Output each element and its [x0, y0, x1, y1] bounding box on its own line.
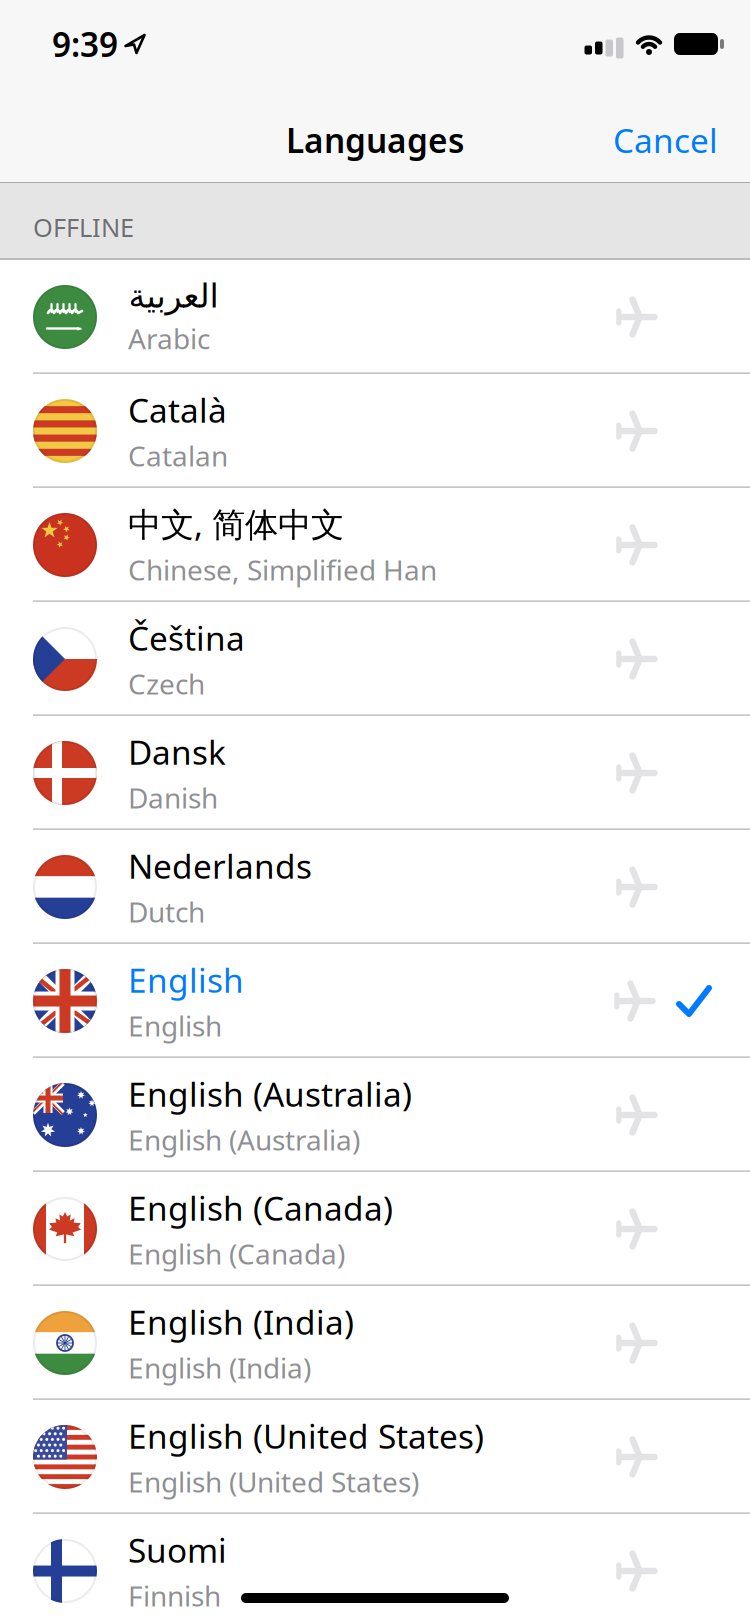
staticText: English (Canada): [128, 1186, 393, 1230]
button[interactable]: English: [0, 944, 750, 1058]
staticText: العربية: [128, 277, 218, 315]
staticText: Finnish: [128, 1577, 221, 1614]
staticText: 中文, 简体中文: [128, 502, 344, 546]
staticText: Catalan: [128, 437, 228, 474]
staticText: Danish: [128, 779, 218, 816]
staticText: Suomi: [128, 1528, 227, 1572]
button[interactable]: English (United States): [0, 1400, 750, 1514]
staticText: Chinese, Simplified Han: [128, 551, 437, 588]
button[interactable]: English (Australia): [0, 1058, 750, 1172]
button[interactable]: Suomi: [0, 1514, 750, 1624]
staticText: Languages: [286, 118, 464, 162]
button[interactable]: Nederlands: [0, 830, 750, 944]
staticText: English (Canada): [128, 1235, 345, 1272]
staticText: English: [128, 1007, 222, 1044]
staticText: OFFLINE: [33, 210, 134, 244]
staticText: Čeština: [128, 616, 245, 660]
staticText: English: [128, 958, 244, 1002]
staticText: English (United States): [128, 1414, 484, 1458]
staticText: 9:39: [52, 22, 118, 66]
staticText: Dansk: [128, 730, 226, 774]
button[interactable]: 中文, 简体中文: [0, 488, 750, 602]
staticText: English (India): [128, 1300, 354, 1344]
button[interactable]: العربية: [0, 260, 750, 374]
staticText: Cancel: [613, 118, 718, 162]
staticText: Nederlands: [128, 844, 312, 888]
staticText: Arabic: [128, 320, 210, 357]
button[interactable]: Català: [0, 374, 750, 488]
staticText: Czech: [128, 665, 205, 702]
staticText: Dutch: [128, 893, 205, 930]
staticText: English (United States): [128, 1463, 419, 1500]
staticText: English (India): [128, 1349, 311, 1386]
button[interactable]: English (India): [0, 1286, 750, 1400]
staticText: English (Australia): [128, 1121, 360, 1158]
button[interactable]: English (Canada): [0, 1172, 750, 1286]
button[interactable]: Dansk: [0, 716, 750, 830]
button[interactable]: Cancel: [613, 118, 750, 162]
staticText: Català: [128, 388, 227, 432]
button[interactable]: Čeština: [0, 602, 750, 716]
staticText: English (Australia): [128, 1072, 412, 1116]
